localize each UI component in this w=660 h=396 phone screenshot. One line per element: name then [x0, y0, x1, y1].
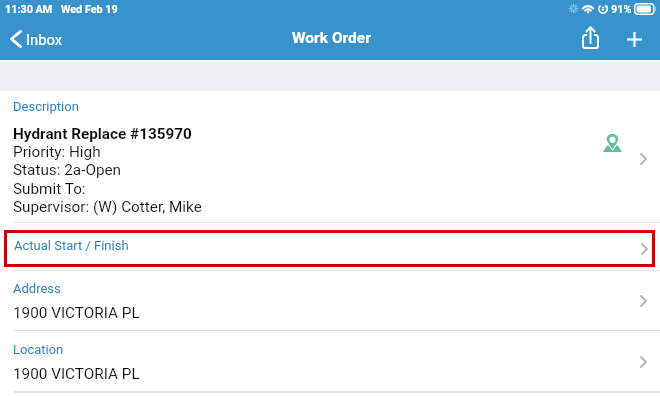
button[interactable]: Inbox [4, 22, 72, 60]
staticText: Wed Feb 19 [61, 3, 118, 16]
staticText: 1900 VICTORIA PL [13, 304, 140, 322]
staticText: 91% [611, 3, 632, 16]
staticText: Submit To: [13, 180, 86, 198]
button[interactable]: Share [572, 22, 608, 60]
staticText: Location [13, 342, 64, 357]
button[interactable]: Add [617, 22, 653, 60]
staticText: Inbox [26, 31, 63, 48]
staticText: Address [13, 281, 61, 296]
button[interactable]: Description [0, 91, 660, 223]
button[interactable]: Location [0, 331, 660, 392]
staticText: Description [13, 99, 79, 114]
staticText: Actual Start / Finish [14, 238, 129, 253]
staticText: Supervisor: (W) Cotter, Mike [13, 198, 202, 216]
staticText: Hydrant Replace #135970 [13, 125, 192, 143]
staticText: 1900 VICTORIA PL [13, 365, 140, 383]
staticText: Work Order [292, 29, 371, 47]
staticText: Priority: High [13, 143, 101, 161]
button[interactable]: Address [0, 270, 660, 331]
staticText: Status: 2a-Open [13, 161, 122, 179]
button[interactable]: Actual Start / Finish [4, 230, 655, 267]
staticText: 11:30 AM [5, 3, 53, 16]
